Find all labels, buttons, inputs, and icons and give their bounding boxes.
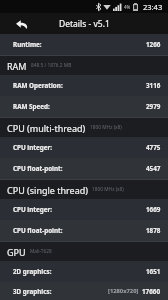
staticText: 1266: [146, 40, 161, 49]
staticText: RAM: [7, 60, 27, 72]
staticText: 2979: [146, 102, 161, 111]
staticText: 1651: [146, 267, 161, 276]
staticText: CPU (single thread): [7, 184, 88, 196]
button[interactable]: RAM Operation:: [0, 75, 168, 96]
button[interactable]: Runtime:: [0, 34, 168, 55]
staticText: GPU: [7, 246, 26, 258]
staticText: 848.5 / 1876.2 MB: [31, 62, 72, 69]
staticText: 2D graphics:: [13, 267, 52, 276]
staticText: CPU float-point:: [13, 164, 63, 173]
button[interactable]: CPU float-point:: [0, 220, 168, 241]
staticText: 17660: [142, 287, 161, 296]
staticText: CPU integer:: [13, 205, 53, 214]
staticText: CPU (multi-thread): [7, 122, 86, 134]
staticText: 1800 MHz (x8): [92, 186, 124, 193]
staticText: CPU float-point:: [13, 226, 63, 235]
staticText: 4547: [146, 164, 161, 173]
button[interactable]: CPU integer:: [0, 137, 168, 158]
button[interactable]: Back: [13, 15, 31, 33]
staticText: 4%: [124, 4, 131, 10]
button[interactable]: 2D graphics:: [0, 261, 168, 282]
staticText: CPU integer:: [13, 143, 53, 152]
staticText: Details - v5.1: [59, 18, 110, 30]
staticText: 1800 MHz (x8): [90, 124, 122, 131]
staticText: 4775: [146, 143, 161, 152]
button[interactable]: CPU float-point:: [0, 158, 168, 179]
staticText: 3D graphics:: [13, 287, 52, 296]
button[interactable]: CPU integer:: [0, 199, 168, 220]
staticText: RAM Speed:: [13, 102, 50, 111]
staticText: Runtime:: [13, 40, 42, 49]
staticText: [1280x720]: [108, 287, 139, 295]
staticText: 1669: [146, 205, 161, 214]
staticText: RAM Operation:: [13, 81, 63, 90]
staticText: Mali-T628: [30, 248, 52, 255]
button[interactable]: RAM Speed:: [0, 96, 168, 117]
staticText: 3116: [146, 81, 161, 90]
staticText: 23:43: [143, 2, 163, 12]
staticText: 1878: [146, 226, 161, 235]
button[interactable]: 3D graphics:: [0, 282, 168, 300]
